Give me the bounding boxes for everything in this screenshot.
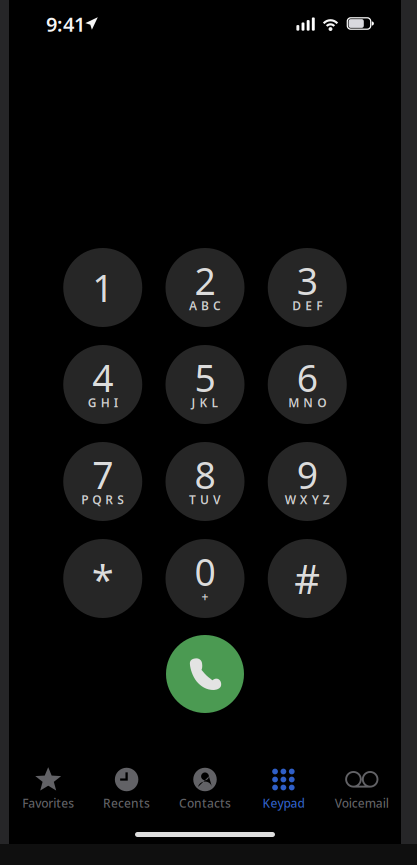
staticText: Keypad	[262, 795, 304, 811]
button[interactable]: 0	[154, 539, 256, 618]
button[interactable]: Voicemail	[323, 767, 401, 810]
button[interactable]: 4	[52, 345, 154, 424]
button[interactable]: #	[256, 539, 358, 618]
staticText: D E F	[292, 297, 322, 313]
staticText: Favorites	[22, 795, 74, 811]
staticText: 8	[194, 450, 215, 499]
button[interactable]: 7	[52, 442, 154, 521]
staticText: A B C	[189, 297, 221, 313]
button[interactable]: 8	[154, 442, 256, 521]
staticText: 7	[92, 450, 113, 499]
staticText: Recents	[103, 795, 150, 811]
staticText: 4	[92, 353, 113, 402]
staticText: P Q R S	[81, 491, 124, 507]
staticText: 9:41	[46, 11, 85, 37]
button[interactable]: 9	[256, 442, 358, 521]
staticText: 3	[297, 256, 318, 305]
button[interactable]: Contacts	[166, 767, 244, 810]
staticText: Contacts	[179, 795, 231, 811]
staticText: 6	[297, 353, 318, 402]
button[interactable]: 2	[154, 248, 256, 327]
staticText: W X Y Z	[285, 491, 330, 507]
staticText: *	[92, 552, 114, 605]
button[interactable]: 6	[256, 345, 358, 424]
button[interactable]: 5	[154, 345, 256, 424]
staticText: #	[294, 552, 320, 605]
button[interactable]: 1	[52, 248, 154, 327]
staticText: 2	[194, 256, 215, 305]
staticText: 5	[194, 353, 215, 402]
staticText: 9	[297, 450, 318, 499]
staticText: 1	[92, 263, 113, 312]
button[interactable]: Recents	[87, 767, 166, 810]
button[interactable]: 3	[256, 248, 358, 327]
staticText: 0	[194, 547, 215, 596]
button[interactable]: Call	[166, 635, 244, 713]
staticText: +	[201, 588, 208, 604]
staticText: M N O	[288, 394, 326, 410]
button[interactable]: Keypad	[244, 767, 323, 810]
staticText: G H I	[88, 394, 118, 410]
staticText: Voicemail	[335, 795, 389, 811]
button[interactable]: Favorites	[9, 767, 87, 810]
staticText: J K L	[191, 394, 218, 410]
button[interactable]: *	[52, 539, 154, 618]
staticText: T U V	[189, 491, 221, 507]
